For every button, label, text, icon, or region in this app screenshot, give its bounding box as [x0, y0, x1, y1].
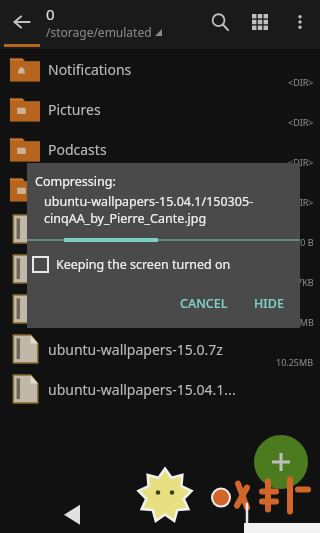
- button[interactable]: Notifications: [0, 49, 320, 89]
- button[interactable]: ubuntu-wallpapers-15.04.1...: [0, 369, 320, 409]
- staticText: 0: [46, 4, 55, 24]
- staticText: Download.7z: [48, 220, 133, 239]
- staticText: IFFSpecs.lzh: [48, 260, 128, 279]
- staticText: <DIR>: [288, 156, 314, 168]
- button[interactable]: HIDE: [246, 289, 292, 318]
- staticText: ubuntu-wallpapers-15.04.1...: [48, 380, 236, 399]
- staticText: CANCEL: [180, 295, 228, 312]
- staticText: Podcasts: [48, 140, 107, 159]
- button[interactable]: Pictures: [0, 89, 320, 129]
- button[interactable]: Add: [254, 435, 308, 489]
- button[interactable]: Ringtones: [0, 169, 320, 209]
- button[interactable]: ubuntu-wallpapers-15.0.7z: [0, 329, 320, 369]
- button[interactable]: CANCEL: [172, 289, 236, 318]
- button[interactable]: Keeping the screen turned on: [27, 256, 300, 273]
- staticText: Pictures: [48, 100, 101, 119]
- button[interactable]: IFFSpecs.lzh: [0, 249, 320, 289]
- staticText: <DIR>: [288, 196, 314, 208]
- staticText: HIDE: [254, 295, 284, 312]
- button[interactable]: Search: [200, 2, 240, 42]
- button[interactable]: More options: [280, 2, 320, 42]
- button[interactable]: Grid view: [240, 2, 280, 42]
- staticText: 90 B: [295, 236, 314, 248]
- staticText: 319.07KB: [274, 276, 314, 288]
- staticText: Keeping the screen turned on: [56, 256, 231, 273]
- button[interactable]: Back: [0, 0, 44, 44]
- button[interactable]: libusb-1.0.21.zip: [0, 289, 320, 329]
- staticText: ubuntu-wallpapers-15.0.7z: [48, 340, 223, 359]
- staticText: 10.25MB: [276, 356, 314, 368]
- staticText: ubuntu-wallpapers-15.04.1/150305-cinqAA_…: [44, 193, 294, 226]
- staticText: Compressing:: [35, 173, 116, 190]
- staticText: <DIR>: [288, 76, 314, 88]
- staticText: /storage/emulated: [46, 24, 152, 40]
- staticText: Notifications: [48, 60, 132, 79]
- staticText: Ringtones: [48, 180, 115, 199]
- staticText: 1.34MB: [282, 316, 314, 328]
- button[interactable]: Download.7z: [0, 209, 320, 249]
- staticText: <DIR>: [288, 116, 314, 128]
- button[interactable]: Podcasts: [0, 129, 320, 169]
